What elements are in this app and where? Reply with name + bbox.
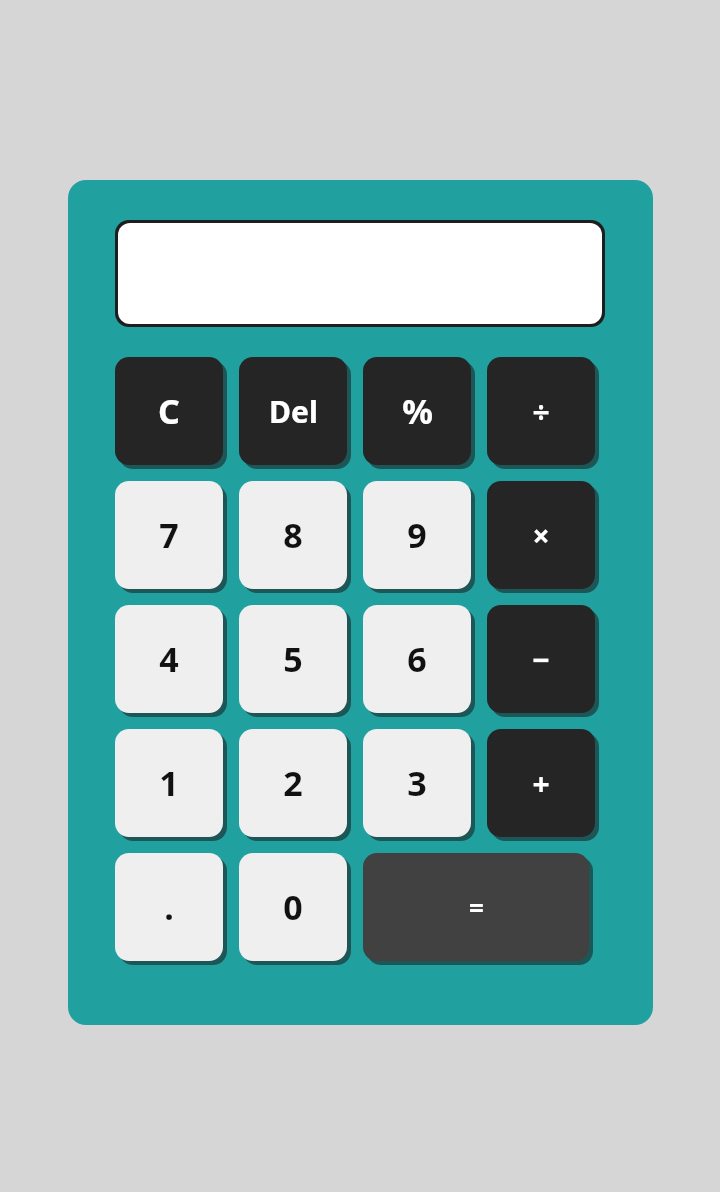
staticText: 7 bbox=[159, 512, 179, 558]
staticText: ÷ bbox=[532, 391, 550, 432]
staticText: 0 bbox=[283, 884, 303, 930]
staticText: 1 bbox=[159, 760, 179, 806]
staticText: Del bbox=[269, 391, 318, 432]
button[interactable]: . bbox=[115, 853, 223, 961]
button[interactable]: 0 bbox=[239, 853, 347, 961]
staticText: 9 bbox=[407, 512, 427, 558]
staticText: 5 bbox=[283, 636, 303, 682]
button[interactable]: = bbox=[363, 853, 589, 961]
staticText: × bbox=[532, 515, 550, 556]
button[interactable]: − bbox=[487, 605, 595, 713]
staticText: 8 bbox=[283, 512, 303, 558]
staticText: 6 bbox=[407, 636, 427, 682]
button[interactable]: 2 bbox=[239, 729, 347, 837]
button[interactable] bbox=[118, 223, 602, 324]
staticText: 2 bbox=[283, 760, 303, 806]
button[interactable]: 4 bbox=[115, 605, 223, 713]
staticText: = bbox=[469, 890, 484, 925]
staticText: + bbox=[532, 763, 550, 804]
staticText: . bbox=[164, 884, 174, 930]
staticText: % bbox=[402, 388, 433, 434]
button[interactable]: 9 bbox=[363, 481, 471, 589]
button[interactable]: % bbox=[363, 357, 471, 465]
button[interactable]: 8 bbox=[239, 481, 347, 589]
button[interactable]: 1 bbox=[115, 729, 223, 837]
button[interactable]: ÷ bbox=[487, 357, 595, 465]
button[interactable]: Del bbox=[239, 357, 347, 465]
staticText: − bbox=[532, 639, 550, 680]
staticText: 4 bbox=[159, 636, 179, 682]
button[interactable]: × bbox=[487, 481, 595, 589]
button[interactable]: + bbox=[487, 729, 595, 837]
staticText: 3 bbox=[407, 760, 427, 806]
button[interactable]: 7 bbox=[115, 481, 223, 589]
button[interactable]: 5 bbox=[239, 605, 347, 713]
button[interactable]: 3 bbox=[363, 729, 471, 837]
button[interactable]: 6 bbox=[363, 605, 471, 713]
button[interactable]: C bbox=[115, 357, 223, 465]
staticText: C bbox=[158, 388, 180, 434]
